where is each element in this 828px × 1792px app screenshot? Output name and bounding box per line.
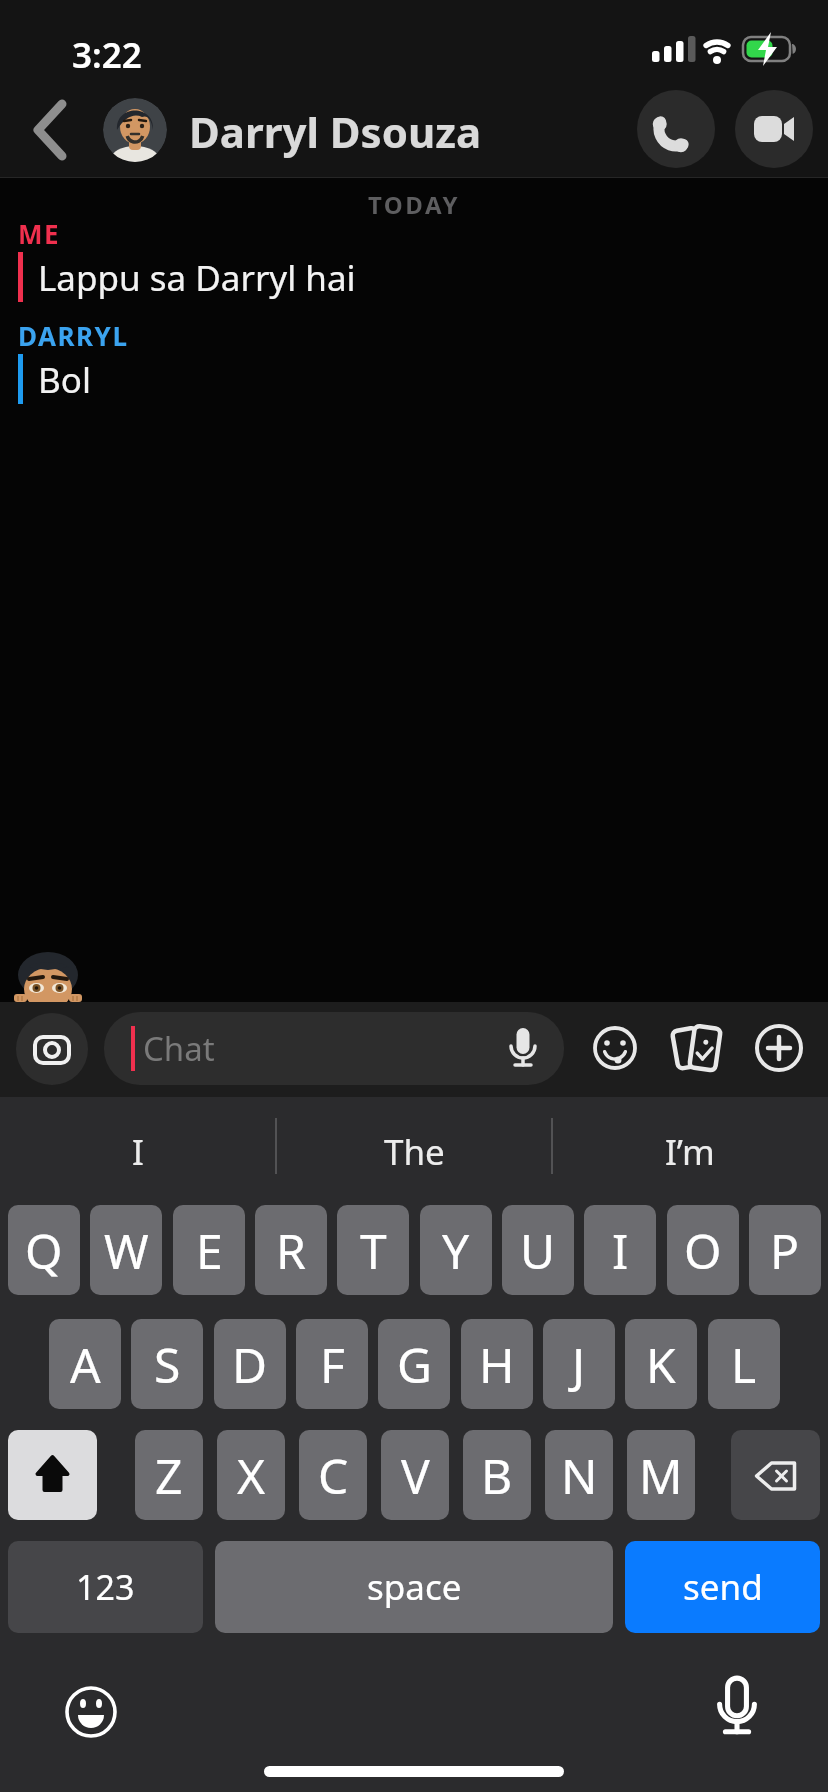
staticText: space xyxy=(367,1563,462,1611)
button[interactable]: O xyxy=(667,1205,739,1295)
staticText: O xyxy=(684,1218,722,1283)
button[interactable] xyxy=(735,90,813,168)
button[interactable]: Q xyxy=(8,1205,80,1295)
button[interactable]: space xyxy=(215,1541,613,1633)
button[interactable]: J xyxy=(543,1319,615,1409)
button[interactable]: I xyxy=(584,1205,656,1295)
staticText: V xyxy=(401,1443,430,1508)
button[interactable]: X xyxy=(217,1430,285,1520)
staticText: B xyxy=(481,1443,513,1508)
button[interactable]: 123 xyxy=(8,1541,203,1633)
staticText: A xyxy=(70,1332,101,1397)
staticText: I’m xyxy=(665,1128,715,1176)
button[interactable]: F xyxy=(296,1319,368,1409)
staticText: G xyxy=(397,1332,432,1397)
button[interactable]: I’m xyxy=(552,1126,828,1178)
button[interactable]: Darryl Dsouza xyxy=(189,103,482,160)
button[interactable]: W xyxy=(90,1205,162,1295)
button[interactable]: M xyxy=(627,1430,695,1520)
button[interactable]: A xyxy=(49,1319,121,1409)
button[interactable]: H xyxy=(461,1319,533,1409)
staticText: The xyxy=(384,1128,445,1176)
staticText: F xyxy=(320,1332,345,1397)
button[interactable]: L xyxy=(708,1319,780,1409)
staticText: S xyxy=(154,1332,181,1397)
button[interactable]: I xyxy=(0,1126,276,1178)
staticText: D xyxy=(232,1332,268,1397)
button[interactable]: T xyxy=(337,1205,409,1295)
button[interactable]: S xyxy=(131,1319,203,1409)
staticText: N xyxy=(561,1443,598,1508)
button[interactable]: U xyxy=(502,1205,574,1295)
staticText: W xyxy=(104,1218,149,1283)
button[interactable]: C xyxy=(299,1430,367,1520)
staticText: TODAY xyxy=(368,188,461,218)
button[interactable] xyxy=(63,1684,119,1740)
staticText: ME xyxy=(18,216,61,251)
button[interactable]: V xyxy=(381,1430,449,1520)
staticText: Lappu sa Darryl hai xyxy=(38,254,356,302)
staticText: send xyxy=(683,1563,763,1611)
staticText: X xyxy=(237,1443,266,1508)
staticText: Q xyxy=(25,1218,63,1283)
staticText: H xyxy=(479,1332,515,1397)
staticText: Chat xyxy=(143,1026,215,1071)
button[interactable]: The xyxy=(276,1126,552,1178)
button[interactable]: P xyxy=(749,1205,821,1295)
staticText: L xyxy=(731,1332,757,1397)
button[interactable]: B xyxy=(463,1430,531,1520)
button[interactable] xyxy=(710,1680,764,1744)
button[interactable] xyxy=(8,1430,97,1520)
button[interactable]: E xyxy=(173,1205,245,1295)
button[interactable]: R xyxy=(255,1205,327,1295)
button[interactable]: G xyxy=(378,1319,450,1409)
staticText: I xyxy=(612,1218,629,1283)
button[interactable] xyxy=(591,1024,639,1072)
staticText: P xyxy=(770,1218,800,1283)
staticText: Darryl Dsouza xyxy=(189,103,482,160)
staticText: C xyxy=(318,1443,349,1508)
button[interactable] xyxy=(731,1430,820,1520)
button[interactable] xyxy=(104,1012,564,1085)
button[interactable] xyxy=(754,1023,804,1073)
button[interactable]: N xyxy=(545,1430,613,1520)
staticText: I xyxy=(132,1128,144,1176)
button[interactable]: D xyxy=(214,1319,286,1409)
staticText: 123 xyxy=(76,1564,135,1610)
staticText: R xyxy=(276,1218,306,1283)
staticText: J xyxy=(572,1332,586,1397)
button[interactable]: Y xyxy=(420,1205,492,1295)
button[interactable] xyxy=(103,98,167,162)
staticText: U xyxy=(520,1218,556,1283)
button[interactable] xyxy=(24,96,76,164)
staticText: Bol xyxy=(38,356,91,404)
staticText: 3:22 xyxy=(72,31,142,79)
staticText: K xyxy=(646,1332,676,1397)
staticText: M xyxy=(639,1443,683,1508)
staticText: E xyxy=(196,1218,223,1283)
staticText: DARRYL xyxy=(18,318,129,353)
button[interactable]: Z xyxy=(135,1430,203,1520)
staticText: T xyxy=(360,1218,387,1283)
button[interactable] xyxy=(637,90,715,168)
staticText: Z xyxy=(155,1443,183,1508)
staticText: Y xyxy=(442,1218,470,1283)
button[interactable] xyxy=(667,1020,725,1076)
button[interactable]: K xyxy=(625,1319,697,1409)
button[interactable] xyxy=(16,1013,88,1085)
button[interactable]: send xyxy=(625,1541,820,1633)
